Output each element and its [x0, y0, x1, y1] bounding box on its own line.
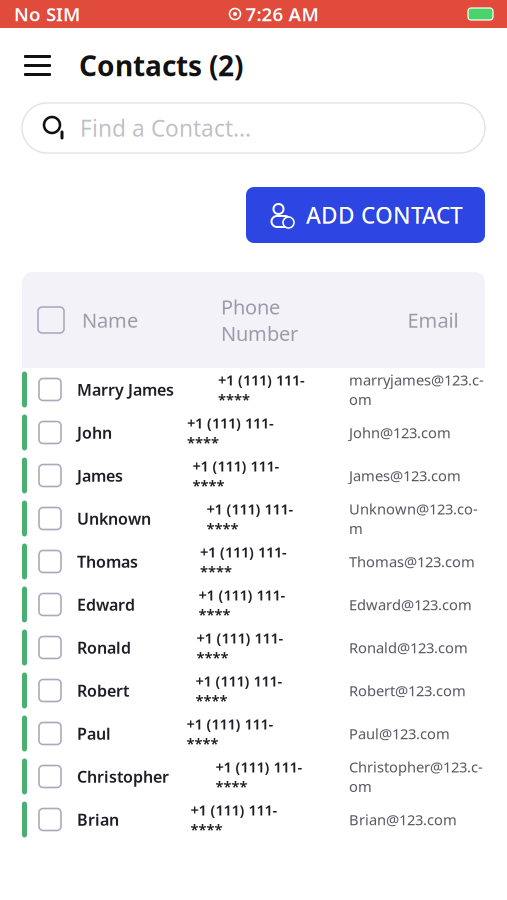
- staticText: ADD CONTACT: [306, 200, 463, 230]
- staticText: John: [77, 422, 112, 443]
- button[interactable]: Robert: [22, 669, 485, 712]
- button[interactable]: Christopher: [22, 755, 485, 798]
- button[interactable]: Menu: [14, 45, 61, 86]
- staticText: Unknown: [77, 508, 151, 529]
- button[interactable]: ADD CONTACT: [246, 187, 485, 243]
- staticText: +1 (111) 111- ****: [218, 370, 305, 409]
- staticText: +1 (111) 111- ****: [190, 800, 277, 839]
- staticText: Christopher@123.com: [349, 757, 483, 796]
- staticText: Marry James: [77, 379, 174, 400]
- staticText: Edward: [77, 594, 135, 615]
- button[interactable]: Paul: [22, 712, 485, 755]
- staticText: Email: [407, 307, 458, 333]
- button[interactable]: John: [22, 411, 485, 454]
- staticText: Paul@123.com: [349, 724, 450, 743]
- staticText: James: [77, 465, 123, 486]
- button[interactable]: Brian: [22, 798, 485, 841]
- staticText: Brian@123.com: [349, 810, 457, 829]
- staticText: Contacts (2): [79, 47, 243, 84]
- staticText: John@123.com: [349, 423, 451, 442]
- staticText: +1 (111) 111- ****: [187, 413, 274, 452]
- staticText: Phone Number: [221, 293, 298, 346]
- staticText: Find a Contact...: [80, 113, 251, 143]
- button[interactable]: Ronald: [22, 626, 485, 669]
- button[interactable]: James: [22, 454, 485, 497]
- button[interactable]: Thomas: [22, 540, 485, 583]
- staticText: Robert: [77, 680, 129, 701]
- staticText: +1 (111) 111- ****: [215, 757, 302, 796]
- staticText: 7:26 AM: [245, 2, 318, 26]
- staticText: Ronald: [77, 637, 131, 658]
- button[interactable]: Find a Contact...: [22, 103, 485, 153]
- button[interactable]: Marry James: [22, 368, 485, 411]
- staticText: Robert@123.com: [349, 681, 466, 700]
- staticText: Paul: [77, 723, 111, 744]
- staticText: +1 (111) 111- ****: [186, 714, 273, 753]
- button[interactable]: Unknown: [22, 497, 485, 540]
- staticText: +1 (111) 111- ****: [200, 542, 287, 581]
- button[interactable]: Edward: [22, 583, 485, 626]
- staticText: Unknown@123.com: [349, 499, 478, 538]
- staticText: Thomas: [77, 551, 138, 572]
- staticText: No SIM: [14, 2, 80, 26]
- staticText: Name: [82, 307, 138, 333]
- staticText: James@123.com: [349, 466, 461, 485]
- staticText: Edward@123.com: [349, 595, 472, 614]
- staticText: +1 (111) 111- ****: [196, 628, 283, 667]
- staticText: Christopher: [77, 766, 169, 787]
- staticText: +1 (111) 111- ****: [192, 456, 279, 495]
- staticText: +1 (111) 111- ****: [198, 585, 285, 624]
- staticText: +1 (111) 111- ****: [195, 671, 282, 710]
- staticText: +1 (111) 111- ****: [206, 499, 293, 538]
- staticText: Ronald@123.com: [349, 638, 468, 657]
- staticText: Brian: [77, 809, 119, 830]
- staticText: marryjames@123.com: [349, 370, 484, 409]
- staticText: Thomas@123.com: [349, 552, 475, 571]
